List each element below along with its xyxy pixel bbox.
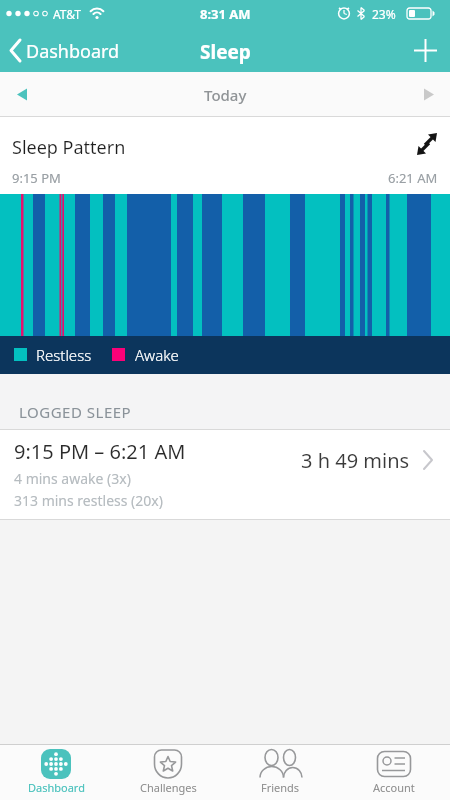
staticText: Sleep [200,39,251,65]
staticText: Friends [261,780,300,795]
staticText: LOGGED SLEEP [19,402,132,422]
staticText: 313 mins restless (20x) [14,491,163,510]
staticText: 6:21 AM [388,169,438,187]
staticText: Restless [36,345,92,365]
staticText: 3 h 49 mins [301,447,410,474]
staticText: Sleep Pattern [12,135,126,160]
staticText: Account [373,780,415,795]
staticText: Challenges [140,780,197,795]
staticText: 4 mins awake (3x) [14,469,131,488]
staticText: Awake [135,345,179,365]
staticText: 9:15 PM [12,169,61,187]
staticText: 23% [372,6,396,22]
staticText: Today [204,85,247,105]
staticText: Dashboard [26,39,120,64]
staticText: AT&T [53,6,81,22]
staticText: 9:15 PM – 6:21 AM [14,438,186,465]
staticText: Dashboard [28,780,85,795]
staticText: 8:31 AM [200,5,251,23]
